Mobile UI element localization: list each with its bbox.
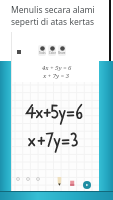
- staticText: x + 7y = 3: [43, 72, 70, 80]
- staticText: Menulis secara alami: [11, 4, 95, 16]
- staticText: Share: [58, 51, 66, 55]
- button[interactable]: Undo: [14, 175, 21, 182]
- button[interactable]: Tools: [38, 45, 46, 56]
- staticText: 4x + 5y = 6: [42, 64, 72, 72]
- button[interactable]: Redo: [24, 175, 31, 182]
- button[interactable]: Share: [58, 45, 66, 56]
- staticText: seperti di atas kertas: [11, 16, 95, 28]
- staticText: Tools: [39, 51, 46, 55]
- button[interactable]: Solve: [83, 181, 91, 189]
- button[interactable]: Menu: [13, 46, 25, 58]
- button[interactable]: Color: [48, 45, 56, 56]
- staticText: Color: [49, 51, 56, 55]
- button[interactable]: Clear: [34, 175, 41, 182]
